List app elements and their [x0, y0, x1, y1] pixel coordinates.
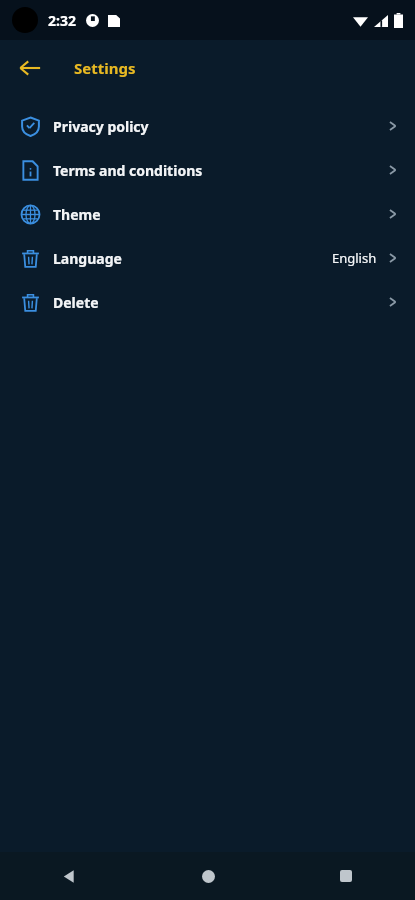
button[interactable]: Privacy policy — [0, 104, 415, 148]
button[interactable]: Back — [8, 46, 52, 90]
staticText: Delete — [53, 293, 99, 312]
button[interactable]: Language — [0, 236, 415, 280]
button[interactable]: Home — [184, 852, 232, 900]
staticText: 2:32 — [48, 11, 76, 30]
staticText: Privacy policy — [53, 117, 149, 136]
button[interactable]: Recent apps — [322, 852, 370, 900]
staticText: Terms and conditions — [53, 161, 203, 180]
staticText: Language — [53, 249, 122, 268]
staticText: Theme — [53, 205, 101, 224]
button[interactable]: Delete — [0, 280, 415, 324]
button[interactable]: Theme — [0, 192, 415, 236]
button[interactable]: Terms and conditions — [0, 148, 415, 192]
button[interactable]: Back — [45, 852, 93, 900]
staticText: Settings — [74, 58, 136, 78]
staticText: English — [332, 249, 377, 267]
